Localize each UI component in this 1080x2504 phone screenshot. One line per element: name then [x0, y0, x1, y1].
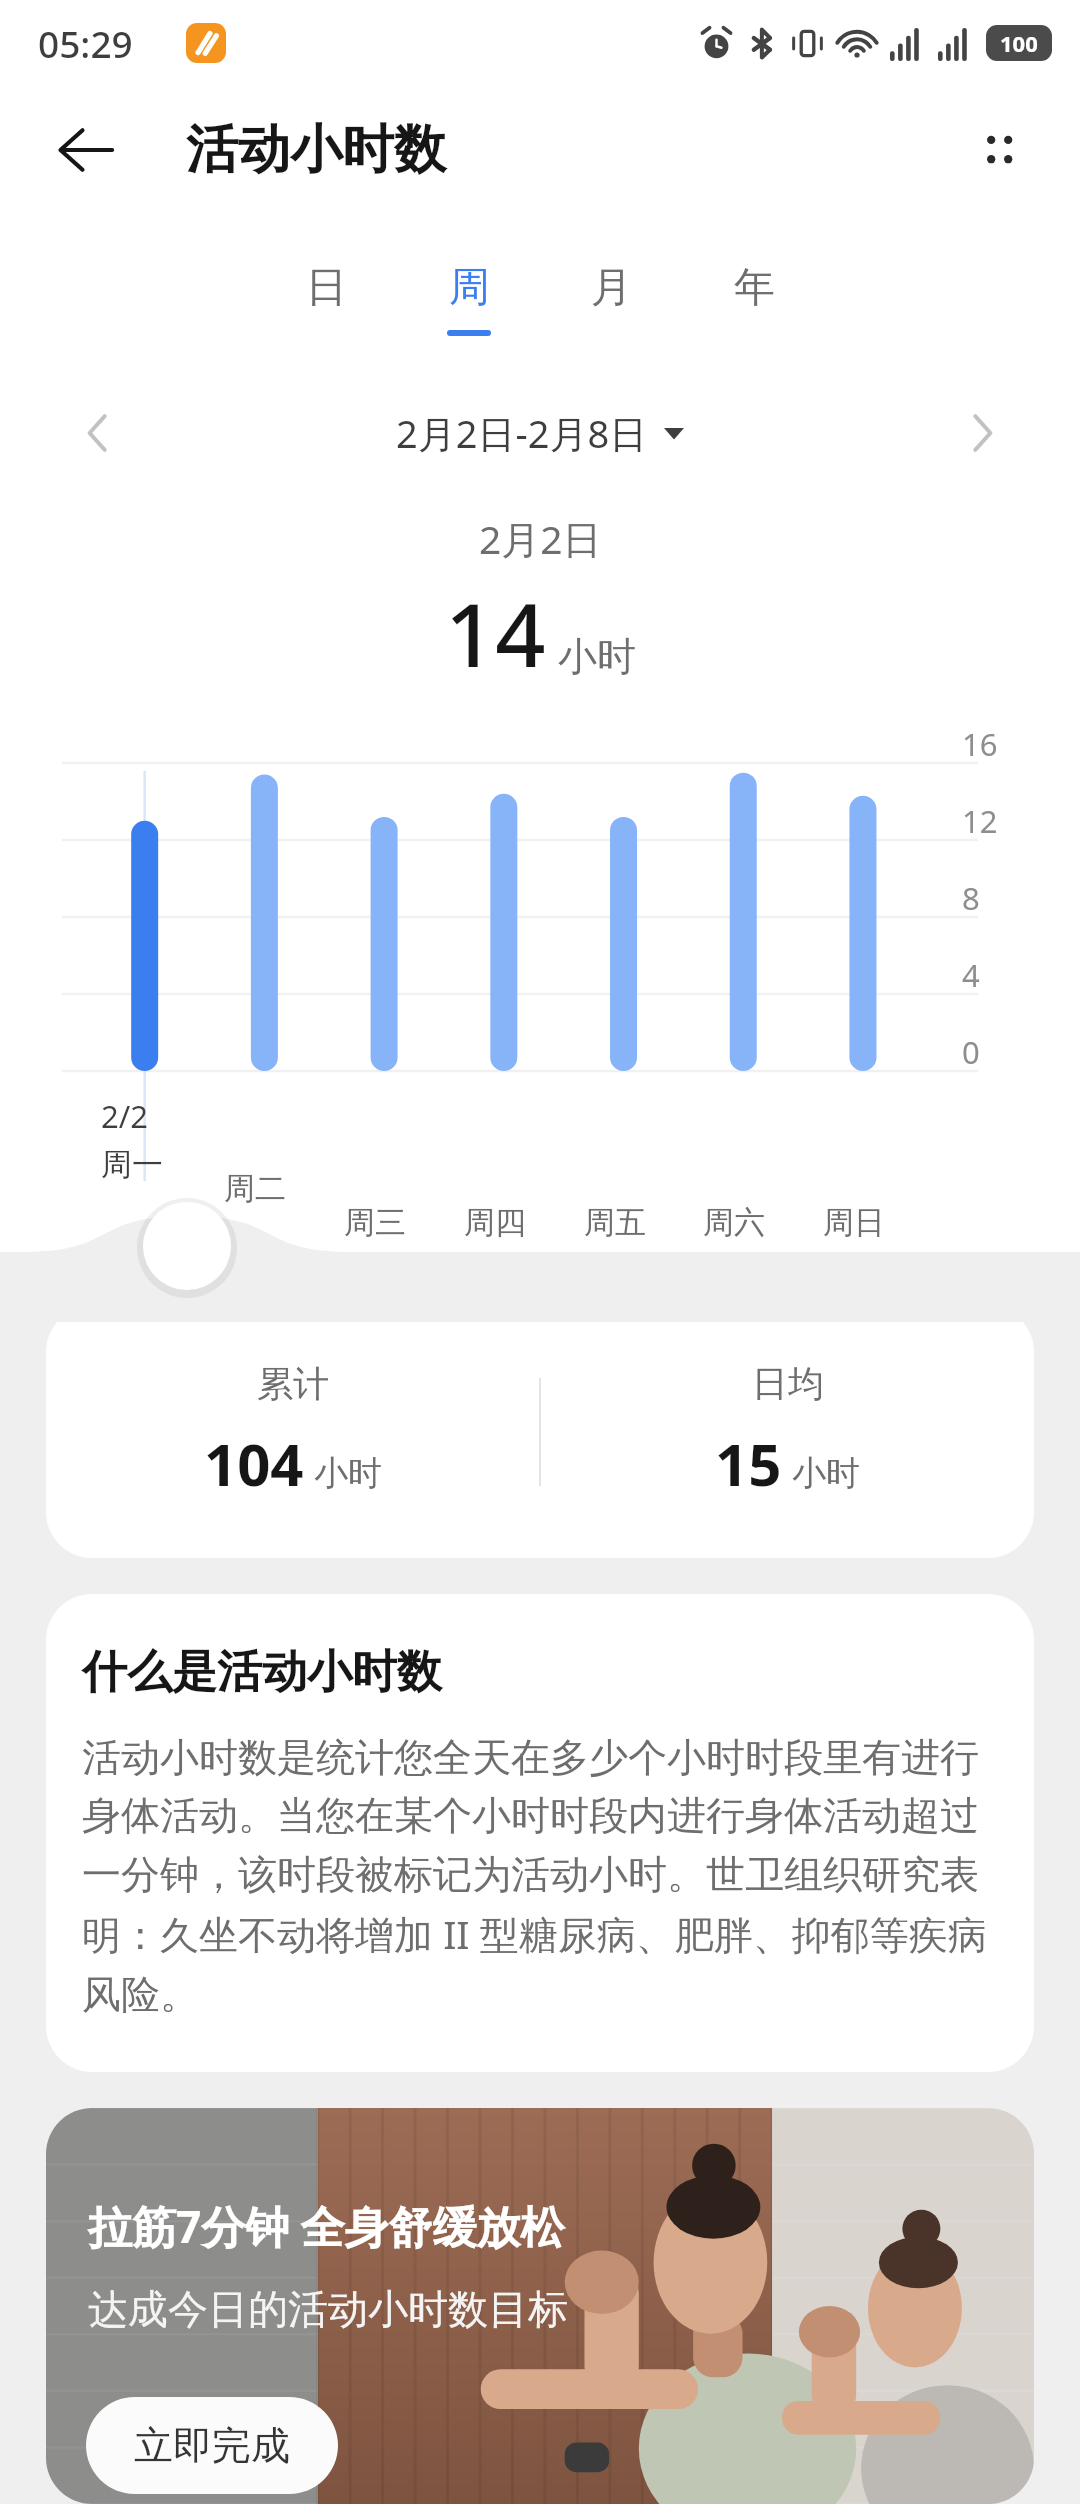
- staticText: 周: [449, 262, 490, 314]
- staticText: 小时: [314, 1452, 382, 1495]
- staticText: 立即完成: [134, 2421, 290, 2470]
- button[interactable]: 日: [290, 258, 362, 340]
- staticText: 小时: [792, 1452, 860, 1495]
- staticText: 累计: [257, 1361, 329, 1406]
- staticText: 周六: [703, 1203, 765, 1242]
- staticText: 活动小时数: [186, 117, 446, 183]
- staticText: 4: [962, 954, 980, 996]
- staticText: 周四: [464, 1203, 526, 1242]
- staticText: 活动小时数是统计您全天在多少个小时时段里有进行身体活动。当您在某个小时时段内进行…: [82, 1733, 998, 2020]
- button[interactable]: Next week: [946, 397, 1018, 469]
- staticText: 日均: [752, 1361, 824, 1406]
- staticText: 2月2日: [479, 512, 602, 565]
- staticText: 周日: [823, 1203, 885, 1242]
- staticText: 月: [591, 262, 632, 314]
- staticText: 周一: [101, 1145, 163, 1184]
- staticText: 周三: [344, 1203, 406, 1242]
- staticText: 周五: [584, 1203, 646, 1242]
- staticText: 12: [962, 800, 998, 842]
- button[interactable]: Previous week: [62, 397, 134, 469]
- staticText: 2月2日-2月8日: [396, 407, 648, 459]
- button[interactable]: 2月2日-2月8日: [396, 407, 684, 459]
- button[interactable]: 立即完成: [86, 2397, 338, 2494]
- button[interactable]: 拉筋7分钟 全身舒缓放松: [46, 2108, 1034, 2504]
- button[interactable]: 年: [718, 258, 790, 340]
- staticText: 14: [445, 573, 546, 693]
- staticText: 年: [734, 262, 775, 314]
- button[interactable]: 月: [575, 258, 647, 340]
- staticText: 2/2: [101, 1095, 148, 1137]
- staticText: 0: [962, 1031, 980, 1073]
- staticText: 16: [962, 723, 998, 765]
- staticText: 什么是活动小时数: [82, 1644, 442, 1701]
- staticText: 周二: [224, 1169, 286, 1208]
- button[interactable]: 周: [433, 258, 505, 340]
- staticText: 05:29: [38, 18, 133, 68]
- staticText: 104: [204, 1424, 304, 1503]
- staticText: 达成今日的活动小时数目标: [88, 2284, 568, 2334]
- staticText: 日: [306, 262, 347, 314]
- button[interactable]: More options: [958, 109, 1040, 191]
- staticText: 小时: [558, 632, 636, 681]
- staticText: 15: [715, 1424, 782, 1503]
- staticText: 8: [962, 877, 980, 919]
- staticText: 100: [1000, 28, 1038, 58]
- button[interactable]: 什么是活动小时数: [46, 1594, 1034, 2072]
- staticText: 拉筋7分钟 全身舒缓放松: [88, 2196, 565, 2256]
- button[interactable]: 累计: [46, 1306, 1034, 1558]
- button[interactable]: Back: [48, 112, 124, 188]
